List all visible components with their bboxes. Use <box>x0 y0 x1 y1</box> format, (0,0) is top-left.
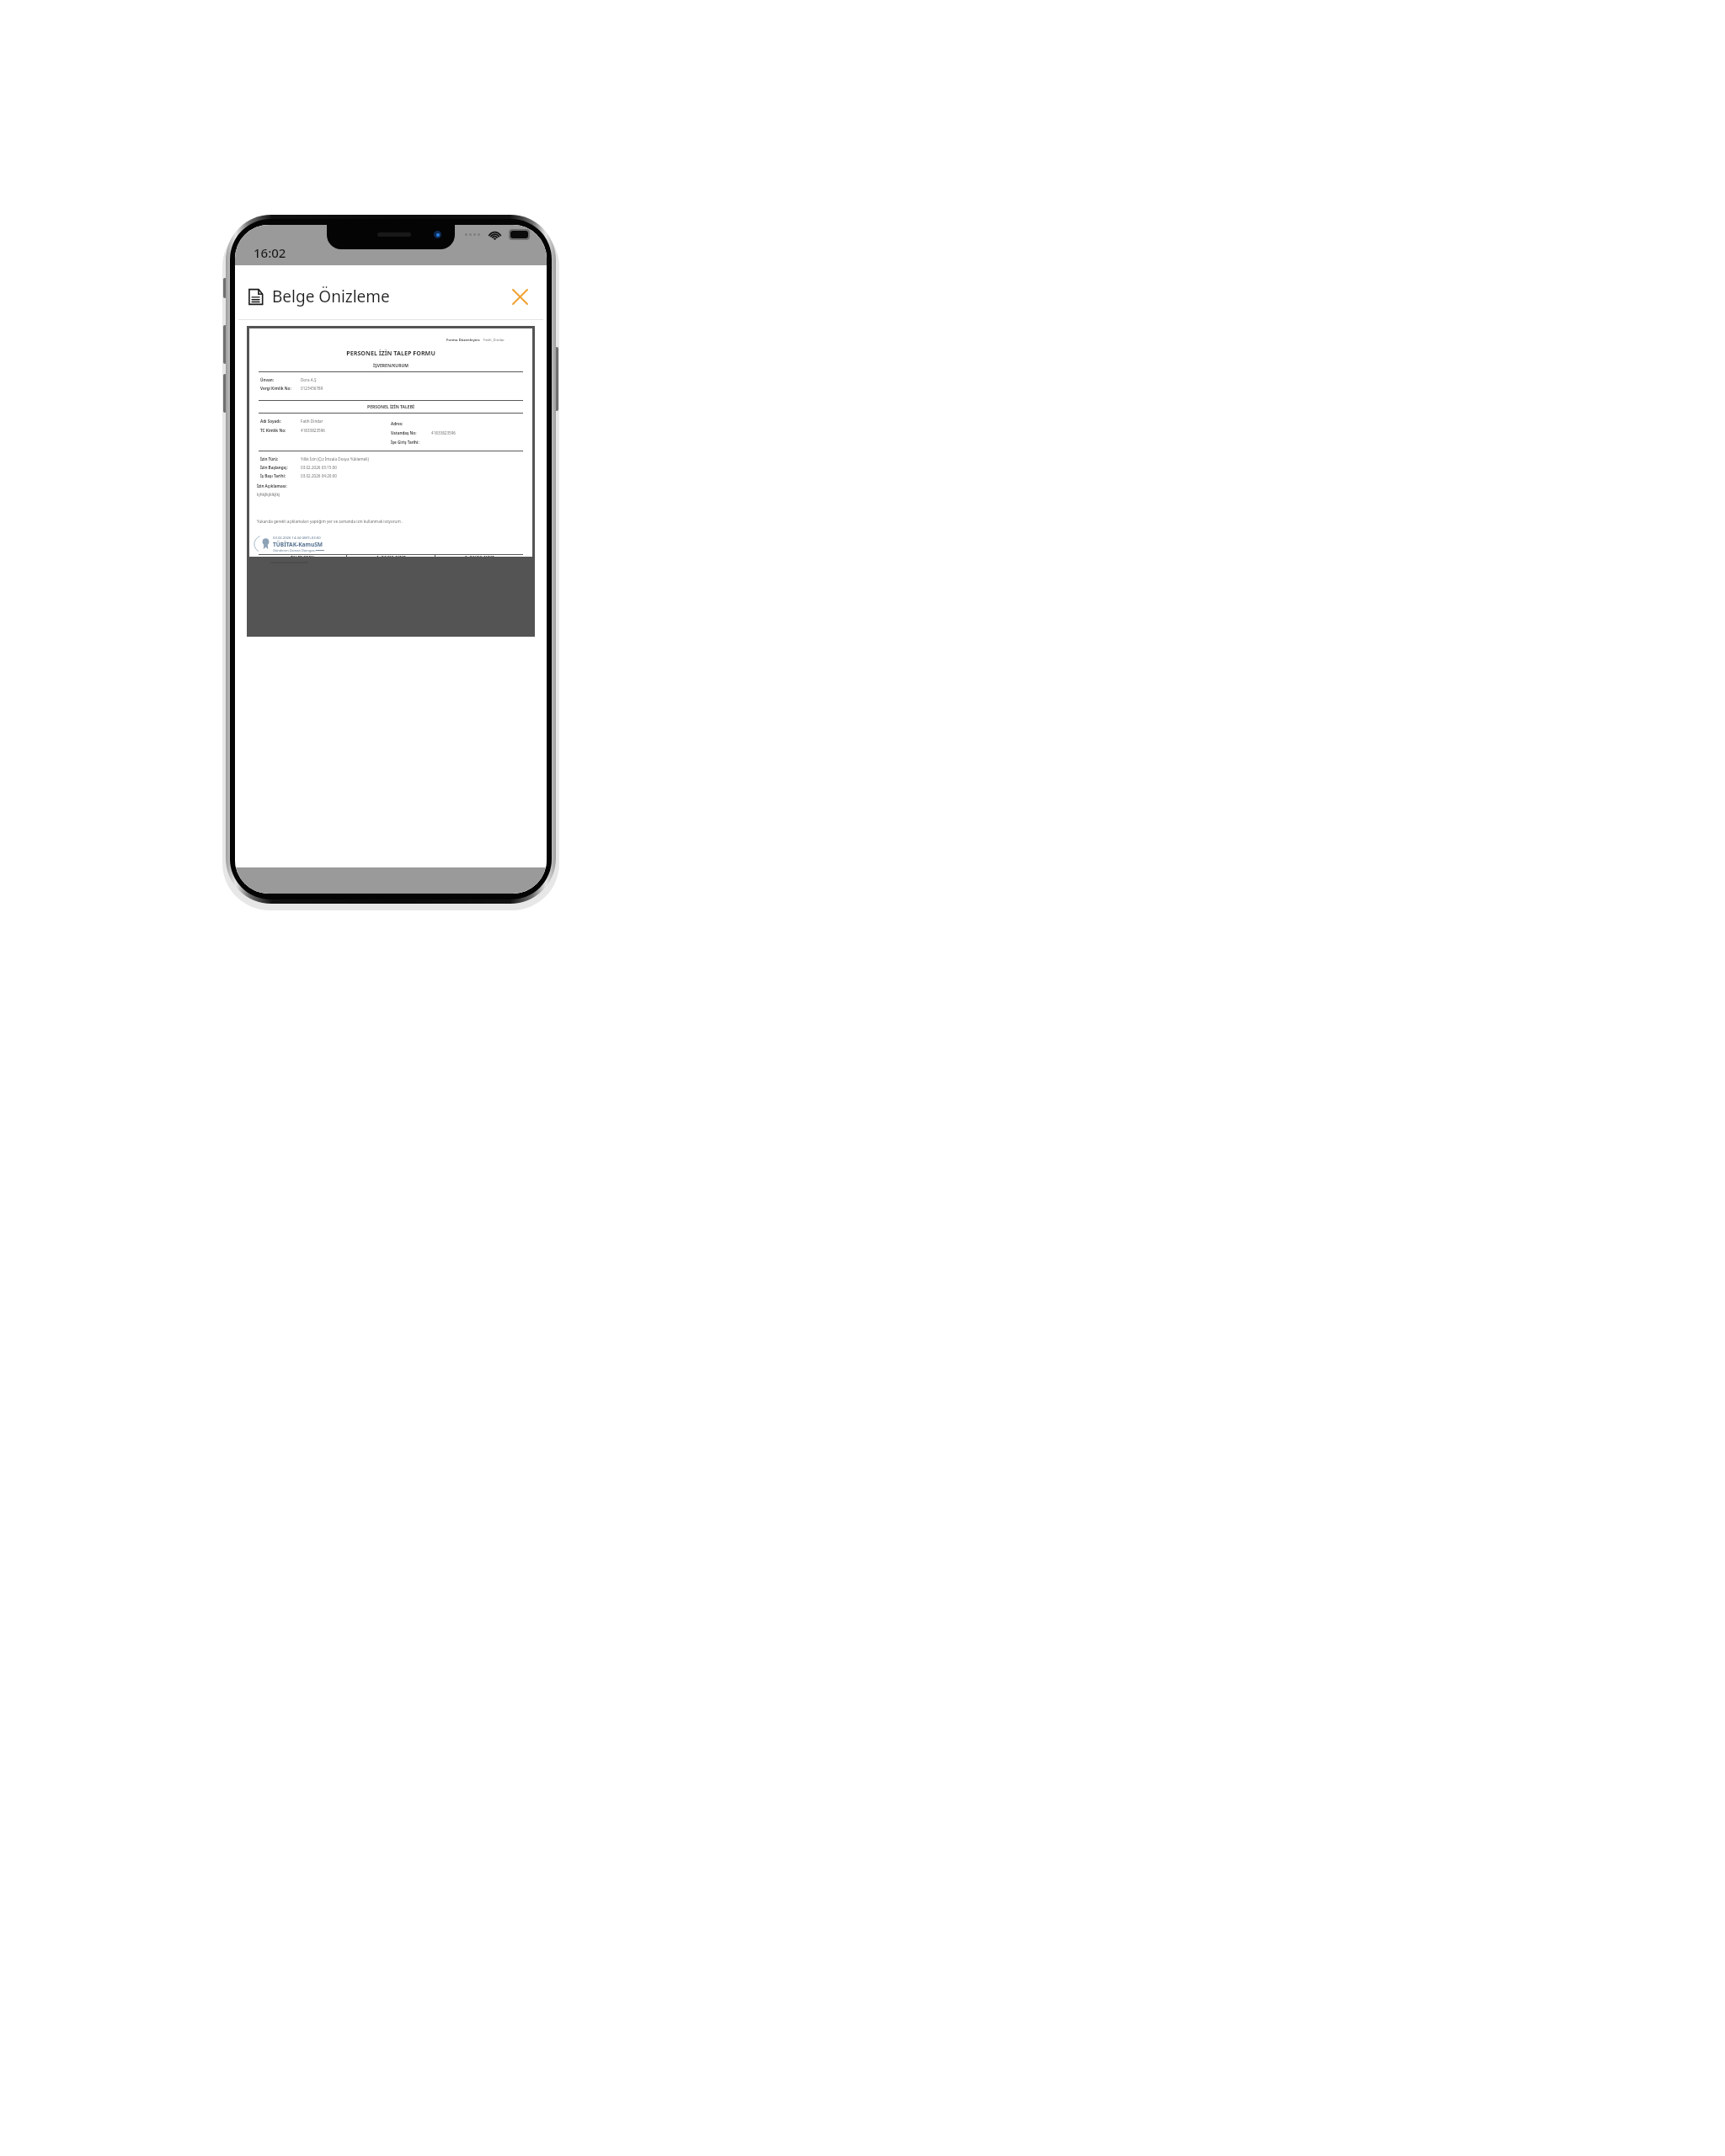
staticText: Dora A.Ş <box>301 377 317 382</box>
staticText: Gönderen Zaman Damgası <box>273 548 316 552</box>
staticText: Adı Soyadı: <box>260 419 281 424</box>
staticText: PERSONEL İZİN TALEP FORMU <box>257 349 525 357</box>
staticText: 1. ONAYLAYICI <box>377 555 406 557</box>
staticText: Formu Düzenleyen: <box>446 338 481 343</box>
staticText: TALEP EDEN <box>291 555 315 557</box>
staticText: 2. ONAYLAYICI <box>465 555 494 557</box>
staticText: İzin Açıklaması: <box>257 483 287 488</box>
staticText: 41833823596 <box>431 430 456 435</box>
staticText: 0123456789 <box>301 386 323 391</box>
staticText: İş Başı Tarihi: <box>260 473 286 478</box>
staticText: PERSONEL İZİN TALEBİ <box>257 404 525 410</box>
staticText: Yıllık İzin (Çiz İmzala Dosya Yüklemeli) <box>301 456 369 462</box>
staticText: Yukarıda gerekli açıklamaları yaptığım y… <box>257 519 403 524</box>
staticText: İzin Başlangıç: <box>260 465 288 470</box>
staticText: Vergi Kimlik No: <box>260 386 291 391</box>
staticText: Vatandaş No: <box>391 430 417 435</box>
staticText: 03.02.2026 03:15:00 <box>301 465 337 470</box>
staticText: Fatih Dindar <box>301 419 323 424</box>
staticText: kjhkjlkjklkjlkj <box>257 492 280 497</box>
staticText: İzin Türü: <box>260 456 279 462</box>
button[interactable]: Kapat <box>505 282 534 311</box>
staticText: 03.02.2026 04:20:00 <box>301 473 337 478</box>
staticText: TÜBİTAK-KamuSM <box>273 541 323 548</box>
staticText: Adres: <box>391 421 403 426</box>
staticText: İşe Giriş Tarihi: <box>391 440 419 445</box>
staticText: Belge Önizleme <box>272 286 390 307</box>
staticText: 41833823596 <box>301 428 325 433</box>
staticText: İŞVEREN/KURUM <box>257 363 525 369</box>
staticText: Ünvan: <box>260 377 275 382</box>
staticText: TC Kimlik No: <box>260 428 286 433</box>
staticText: 16:02 <box>254 244 286 261</box>
staticText: 03.02.2026 14:34 GMT+03:00 <box>273 536 321 541</box>
staticText: Fatih_Dindar <box>483 338 505 343</box>
